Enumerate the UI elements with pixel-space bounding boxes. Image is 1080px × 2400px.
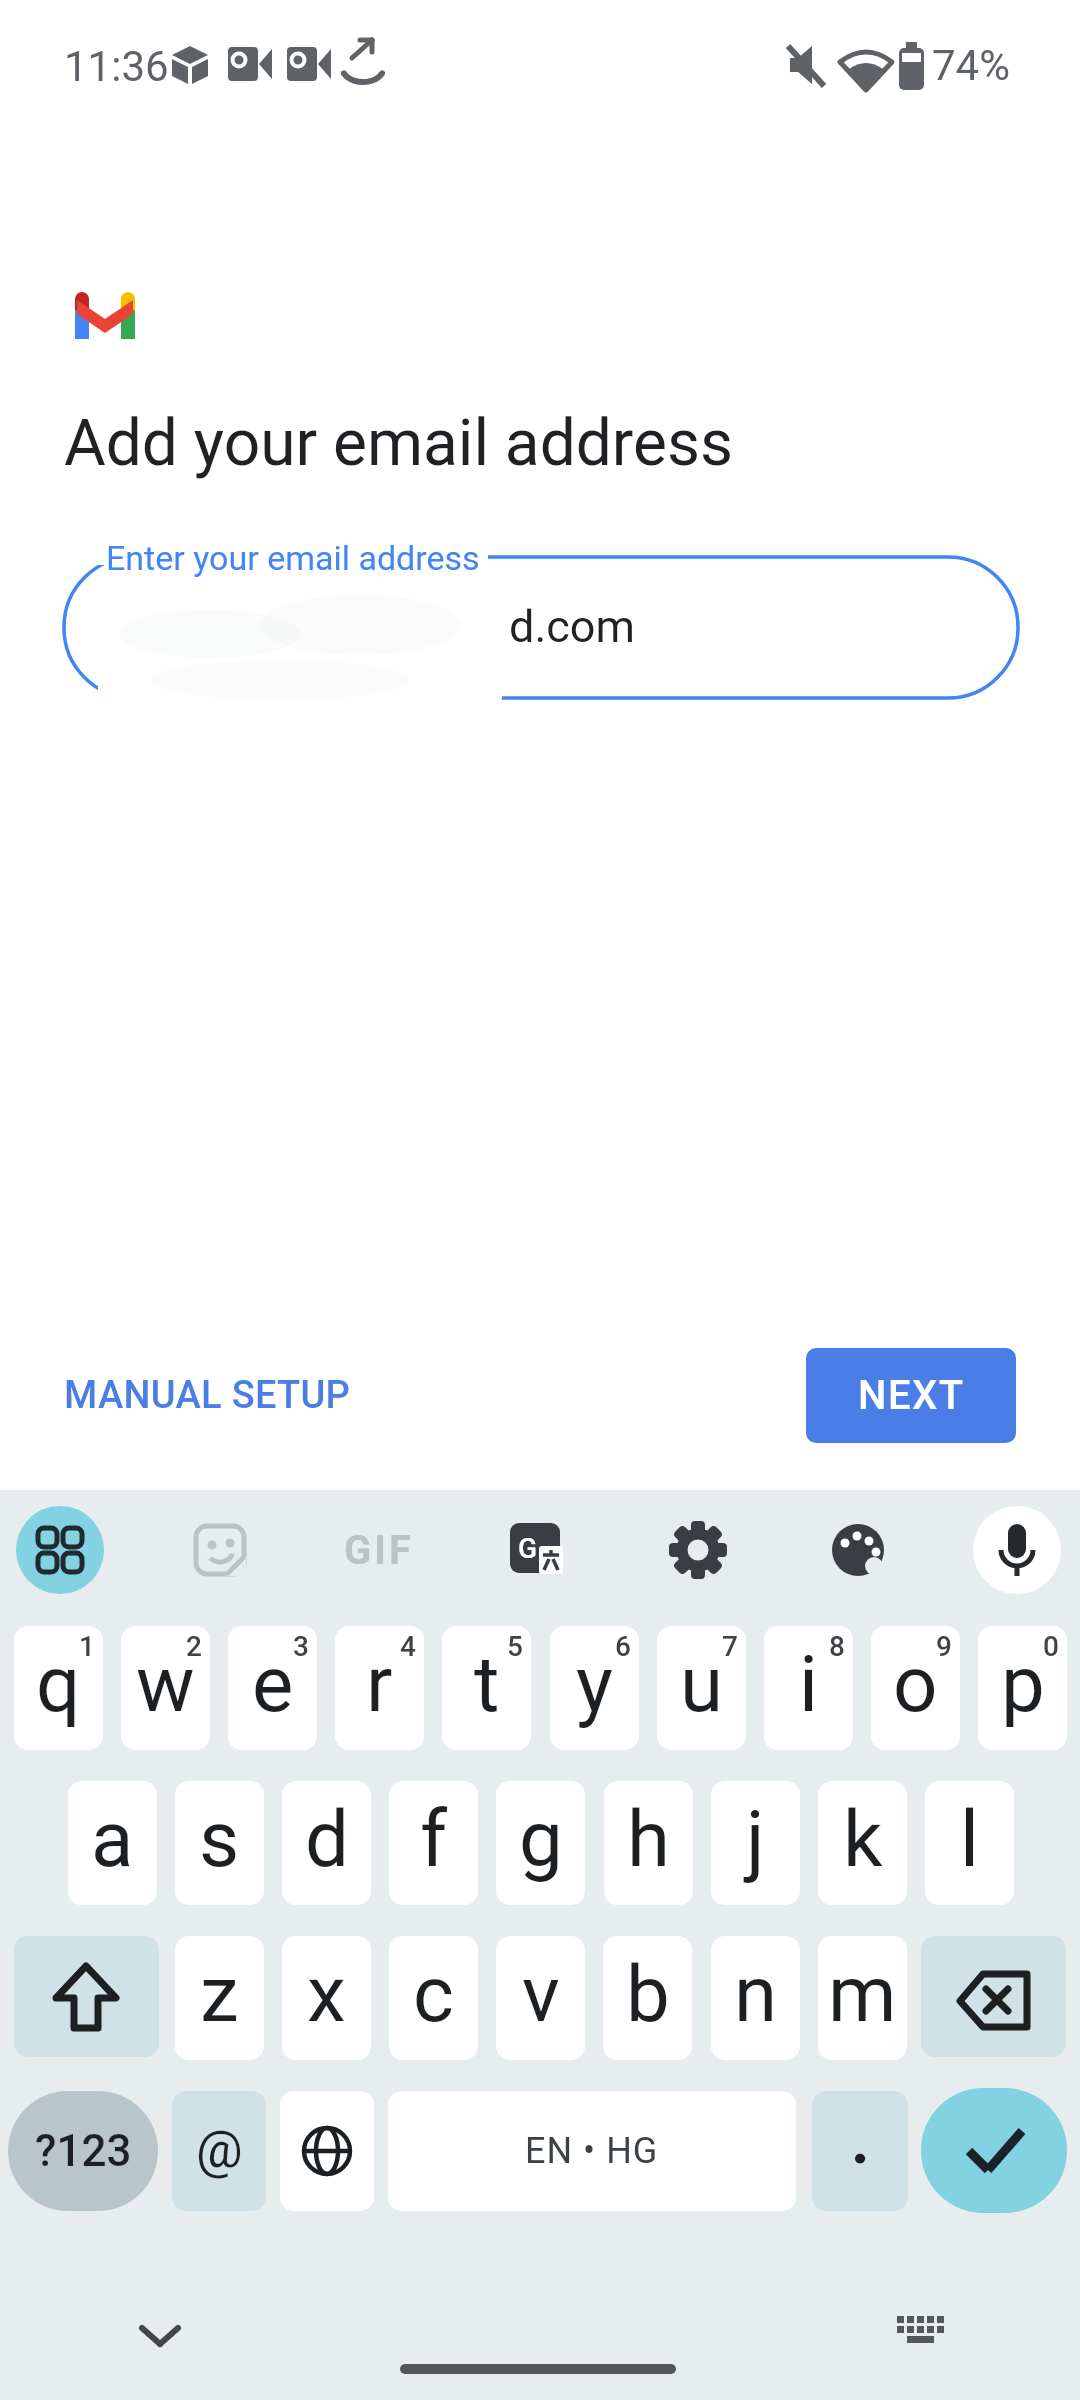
button[interactable]: x xyxy=(282,1936,371,2060)
staticText: . xyxy=(851,2104,870,2179)
button[interactable]: w xyxy=(121,1626,210,1750)
staticText: r xyxy=(366,1639,393,1730)
staticText: v xyxy=(522,1949,560,2040)
button[interactable]: l xyxy=(925,1781,1014,1905)
staticText: 1 xyxy=(79,1630,95,1663)
button[interactable]: v xyxy=(496,1936,585,2060)
staticText: NEXT xyxy=(858,1372,965,1419)
staticText: 2 xyxy=(186,1630,202,1663)
staticText: c xyxy=(413,1949,454,2040)
button[interactable]: s xyxy=(175,1781,264,1905)
button[interactable] xyxy=(120,2295,200,2375)
button[interactable]: z xyxy=(175,1936,264,2060)
button[interactable]: GIF xyxy=(335,1506,423,1594)
staticText: d xyxy=(305,1794,349,1885)
staticText: b xyxy=(626,1949,670,2040)
staticText: 6 xyxy=(615,1630,631,1663)
staticText: d.com xyxy=(509,600,635,653)
button[interactable]: ?123 xyxy=(8,2091,158,2211)
staticText: G xyxy=(518,1532,538,1565)
button[interactable] xyxy=(16,1506,104,1594)
button[interactable]: b xyxy=(603,1936,692,2060)
staticText: MANUAL SETUP xyxy=(64,1373,351,1418)
button[interactable]: t xyxy=(442,1626,531,1750)
button[interactable]: e xyxy=(228,1626,317,1750)
button[interactable]: NEXT xyxy=(806,1348,1016,1443)
button[interactable]: f xyxy=(389,1781,478,1905)
staticText: 74% xyxy=(932,41,1010,90)
staticText: 7 xyxy=(722,1630,738,1663)
button[interactable]: @ xyxy=(172,2091,266,2211)
button[interactable]: g xyxy=(496,1781,585,1905)
staticText: k xyxy=(843,1794,883,1885)
button[interactable] xyxy=(280,2091,374,2211)
button[interactable]: y xyxy=(550,1626,639,1750)
button[interactable] xyxy=(921,2088,1067,2213)
button[interactable]: u xyxy=(657,1626,746,1750)
button[interactable] xyxy=(814,1506,902,1594)
button[interactable]: . xyxy=(812,2091,908,2211)
staticText: i xyxy=(799,1639,818,1730)
staticText: p xyxy=(1001,1639,1045,1730)
button[interactable]: i xyxy=(764,1626,853,1750)
button[interactable] xyxy=(973,1506,1061,1594)
staticText: a xyxy=(91,1794,134,1885)
staticText: s xyxy=(199,1794,240,1885)
button[interactable]: m xyxy=(818,1936,907,2060)
staticText: f xyxy=(420,1794,448,1885)
staticText: ?123 xyxy=(35,2125,132,2177)
button[interactable]: r xyxy=(335,1626,424,1750)
button[interactable] xyxy=(880,2295,960,2375)
staticText: z xyxy=(200,1949,239,2040)
staticText: Add your email address xyxy=(64,406,733,481)
button[interactable] xyxy=(64,557,1018,698)
staticText: g xyxy=(519,1794,563,1885)
staticText: w xyxy=(136,1639,195,1730)
staticText: @ xyxy=(196,2119,243,2180)
staticText: j xyxy=(746,1794,765,1885)
button[interactable]: n xyxy=(711,1936,800,2060)
staticText: 4 xyxy=(400,1630,416,1663)
staticText: h xyxy=(627,1794,670,1885)
button[interactable]: p xyxy=(978,1626,1067,1750)
button[interactable]: h xyxy=(604,1781,693,1905)
button[interactable]: d xyxy=(282,1781,371,1905)
staticText: q xyxy=(36,1639,81,1730)
button[interactable] xyxy=(654,1506,742,1594)
button[interactable]: G xyxy=(493,1506,581,1594)
staticText: 0 xyxy=(1043,1630,1059,1663)
staticText: 11:36 xyxy=(64,42,169,91)
staticText: 8 xyxy=(829,1630,845,1663)
button[interactable]: k xyxy=(818,1781,907,1905)
staticText: l xyxy=(960,1794,979,1885)
button[interactable]: EN • HG xyxy=(388,2091,796,2211)
staticText: 5 xyxy=(507,1630,523,1663)
button[interactable]: q xyxy=(14,1626,103,1750)
button[interactable] xyxy=(14,1936,159,2057)
staticText: EN • HG xyxy=(525,2130,659,2172)
staticText: Enter your email address xyxy=(106,538,480,578)
button[interactable]: a xyxy=(68,1781,157,1905)
staticText: x xyxy=(307,1949,346,2040)
button[interactable] xyxy=(176,1506,264,1594)
staticText: o xyxy=(893,1639,938,1730)
button[interactable] xyxy=(921,1936,1066,2057)
staticText: 9 xyxy=(936,1630,952,1663)
button[interactable]: j xyxy=(711,1781,800,1905)
staticText: u xyxy=(680,1639,723,1730)
button[interactable]: MANUAL SETUP xyxy=(50,1358,470,1433)
staticText: m xyxy=(828,1949,897,2040)
staticText: GIF xyxy=(344,1527,414,1574)
staticText: n xyxy=(734,1949,778,2040)
button[interactable]: o xyxy=(871,1626,960,1750)
staticText: y xyxy=(576,1639,613,1730)
button[interactable]: c xyxy=(389,1936,478,2060)
staticText: e xyxy=(252,1639,294,1730)
staticText: 3 xyxy=(293,1630,309,1663)
staticText: t xyxy=(474,1639,500,1730)
